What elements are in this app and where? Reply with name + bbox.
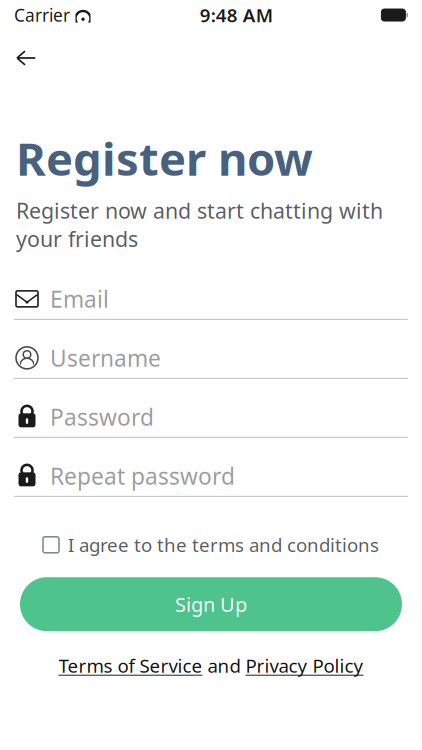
staticText: Terms of Service [58, 653, 202, 678]
staticText: 9:48 AM [200, 3, 273, 27]
staticText: Carrier [14, 3, 70, 26]
button[interactable]: Terms of Service [58, 653, 202, 678]
staticText: I agree to the terms and conditions [68, 532, 379, 557]
staticText: Repeat password [50, 461, 235, 491]
staticText: Register now [16, 128, 313, 188]
staticText: Password [50, 402, 154, 432]
staticText: Privacy Policy [245, 653, 363, 678]
button[interactable]: Email [14, 279, 408, 338]
staticText: Register now and start chatting with you… [16, 196, 383, 253]
staticText: Sign Up [175, 591, 247, 617]
button[interactable]: Repeat password [14, 456, 408, 515]
button[interactable]: Password [14, 397, 408, 456]
staticText: and [207, 653, 240, 678]
button[interactable]: Privacy Policy [245, 653, 363, 678]
staticText: Username [50, 343, 161, 373]
button[interactable]: Username [14, 338, 408, 397]
button[interactable]: Back [4, 36, 48, 80]
button[interactable]: Sign Up [20, 577, 402, 631]
button[interactable]: I agree to the terms and conditions [0, 526, 422, 563]
staticText: Email [50, 284, 109, 314]
